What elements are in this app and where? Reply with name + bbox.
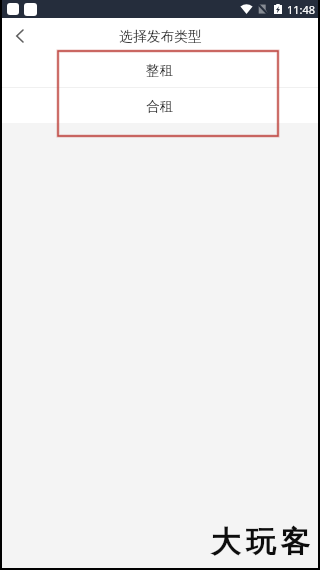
- staticText: 大玩客: [208, 524, 313, 561]
- button[interactable]: 整租: [0, 51, 320, 87]
- button[interactable]: Back: [0, 18, 40, 51]
- staticText: 整租: [146, 62, 174, 79]
- staticText: 选择发布类型: [119, 28, 202, 45]
- staticText: 合租: [146, 98, 174, 115]
- button[interactable]: 合租: [0, 88, 320, 123]
- staticText: 11:48: [287, 2, 316, 17]
